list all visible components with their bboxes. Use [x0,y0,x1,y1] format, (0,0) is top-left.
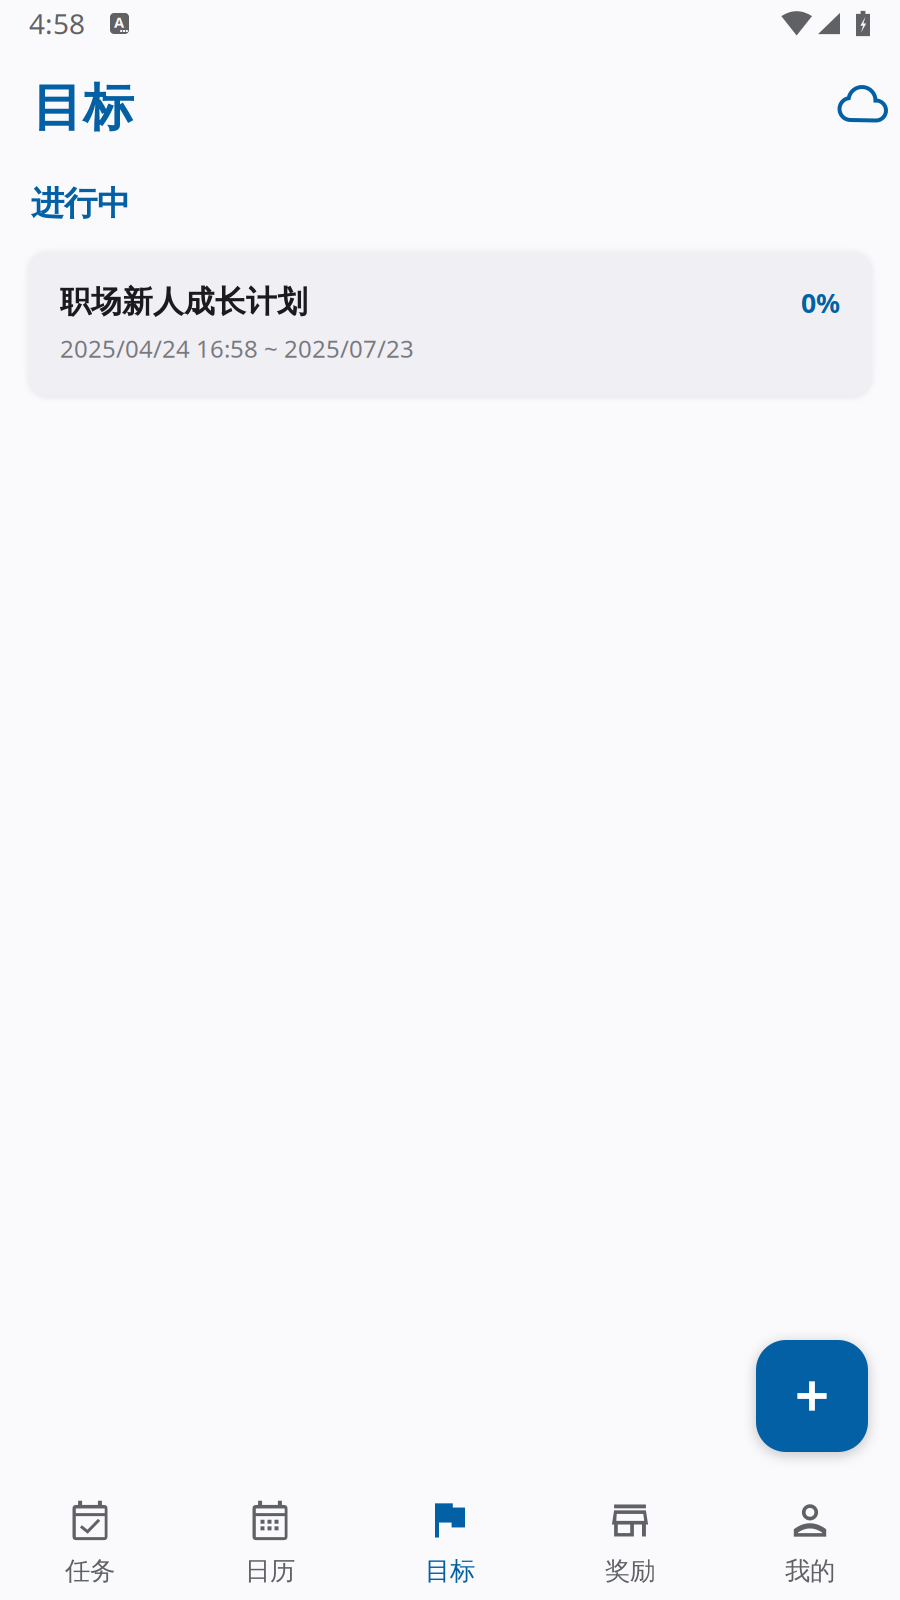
button[interactable]: 任务 [0,1456,180,1598]
button[interactable]: Sync to cloud [817,77,890,139]
button[interactable]: 奖励 [540,1456,720,1598]
staticText: 目标 [32,77,134,139]
staticText: 日历 [245,1555,295,1586]
staticText: A [114,12,124,32]
staticText: 我的 [785,1555,835,1586]
button[interactable]: Add goal [756,1340,868,1452]
staticText: 4:58 [29,5,85,42]
staticText: 职场新人成长计划 [60,283,308,321]
staticText: 任务 [65,1555,115,1586]
staticText: 目标 [425,1555,475,1586]
button[interactable]: 职场新人成长计划 [29,252,871,395]
button[interactable]: 日历 [180,1456,360,1598]
button[interactable]: 我的 [720,1456,900,1598]
staticText: 奖励 [605,1555,655,1586]
staticText: 进行中 [31,183,130,224]
staticText: 2025/04/24 16:58 ~ 2025/07/23 [60,333,414,364]
staticText: 0% [801,285,840,320]
button[interactable]: 目标 [360,1456,540,1598]
